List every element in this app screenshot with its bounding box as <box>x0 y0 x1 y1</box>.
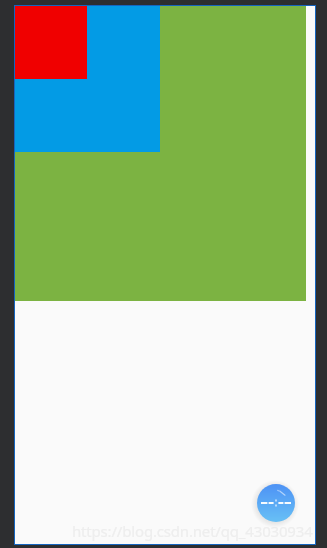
staticText: https://blog.csdn.net/qq_43030934 <box>72 521 313 541</box>
button[interactable]: Compose message <box>257 484 295 522</box>
